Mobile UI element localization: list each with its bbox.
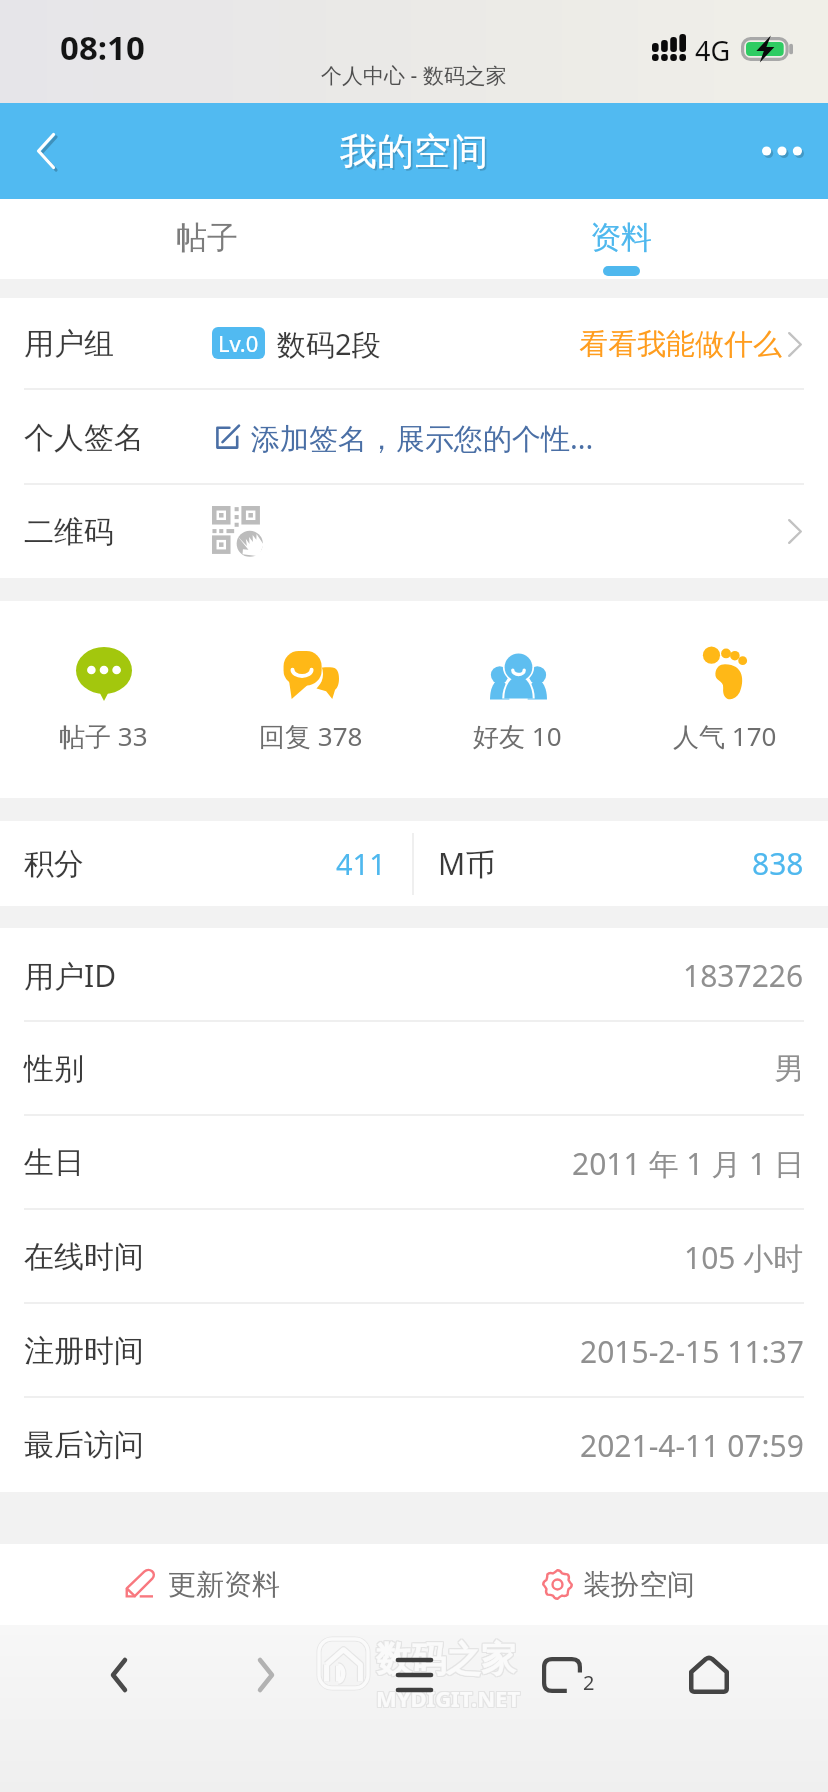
staticText: MYDIGIT.NET bbox=[375, 1683, 520, 1713]
staticText: 4G bbox=[695, 32, 731, 69]
button[interactable]: 帖子 33 bbox=[0, 601, 207, 798]
staticText: 2021-4-11 07:59 bbox=[580, 1425, 804, 1466]
staticText: 最后访问 bbox=[24, 1426, 144, 1464]
staticText: 411 bbox=[336, 844, 386, 883]
button[interactable]: 帖子 bbox=[0, 199, 414, 279]
staticText: MYDIGIT.NET bbox=[375, 1682, 520, 1712]
button[interactable]: More options bbox=[736, 105, 828, 197]
staticText: 数码2段 bbox=[277, 324, 381, 364]
button[interactable]: 生日 bbox=[0, 1116, 828, 1210]
staticText: M币 bbox=[438, 843, 496, 884]
staticText: 二维码 bbox=[24, 513, 114, 551]
button[interactable]: 积分 bbox=[0, 821, 414, 906]
button[interactable]: 性别 bbox=[0, 1022, 828, 1116]
staticText: 好友 10 bbox=[473, 718, 562, 754]
button[interactable]: 回复 378 bbox=[207, 601, 414, 798]
staticText: 添加签名，展示您的个性... bbox=[251, 418, 594, 458]
staticText: 看看我能做什么 bbox=[579, 326, 782, 363]
staticText: 用户ID bbox=[24, 955, 117, 996]
staticText: 数码之家 bbox=[377, 1638, 517, 1682]
staticText: 数码之家 bbox=[376, 1636, 516, 1680]
staticText: 我的空间 bbox=[342, 130, 490, 177]
staticText: 装扮空间 bbox=[583, 1567, 695, 1602]
button[interactable]: 二维码 bbox=[0, 485, 828, 578]
staticText: 回复 378 bbox=[259, 718, 363, 754]
button[interactable]: 用户ID bbox=[0, 928, 828, 1022]
button[interactable]: 好友 10 bbox=[414, 601, 621, 798]
staticText: 我的空间 bbox=[340, 128, 488, 175]
button[interactable]: 注册时间 bbox=[0, 1304, 828, 1398]
button[interactable]: 人气 170 bbox=[621, 601, 828, 798]
staticText: 资料 bbox=[590, 218, 652, 257]
staticText: MYDIGIT.NET bbox=[375, 1684, 520, 1714]
staticText: 个人中心 - 数码之家 bbox=[321, 61, 507, 90]
button[interactable]: 资料 bbox=[414, 199, 828, 279]
staticText: 积分 bbox=[24, 845, 84, 883]
button[interactable]: M币 bbox=[414, 821, 828, 906]
staticText: Lv.0 bbox=[218, 328, 259, 358]
staticText: 2 bbox=[583, 1669, 595, 1696]
button[interactable]: Home bbox=[676, 1642, 742, 1708]
staticText: MYDIGIT.NET bbox=[376, 1684, 521, 1714]
staticText: 数码之家 bbox=[375, 1636, 515, 1680]
staticText: MYDIGIT.NET bbox=[377, 1684, 522, 1714]
button[interactable]: 在线时间 bbox=[0, 1210, 828, 1304]
staticText: 2015-2-15 11:37 bbox=[580, 1331, 804, 1372]
staticText: MYDIGIT.NET bbox=[376, 1683, 521, 1713]
button[interactable]: 个人签名 bbox=[0, 390, 828, 485]
staticText: 帖子 bbox=[176, 218, 238, 257]
button[interactable]: 最后访问 bbox=[0, 1398, 828, 1492]
button[interactable]: Back bbox=[86, 1642, 152, 1708]
staticText: 105 小时 bbox=[684, 1237, 804, 1278]
staticText: 帖子 33 bbox=[59, 718, 148, 754]
staticText: 个人签名 bbox=[24, 419, 144, 457]
staticText: 数码之家 bbox=[377, 1637, 517, 1681]
staticText: 08:10 bbox=[60, 25, 145, 70]
staticText: 用户组 bbox=[24, 325, 114, 363]
staticText: 男 bbox=[774, 1050, 804, 1088]
staticText: 生日 bbox=[24, 1144, 84, 1182]
button[interactable]: Recent apps bbox=[529, 1642, 595, 1708]
staticText: MYDIGIT.NET bbox=[377, 1683, 522, 1713]
staticText: 数码之家 bbox=[375, 1637, 515, 1681]
button[interactable]: 更新资料 bbox=[0, 1544, 414, 1625]
button[interactable]: 装扮空间 bbox=[414, 1544, 828, 1625]
staticText: 数码之家 bbox=[375, 1638, 515, 1682]
staticText: 数码之家 bbox=[377, 1636, 517, 1680]
button[interactable]: 用户组 bbox=[0, 298, 828, 390]
staticText: 2011 年 1 月 1 日 bbox=[572, 1143, 804, 1184]
staticText: 数码之家 bbox=[376, 1638, 516, 1682]
staticText: 1837226 bbox=[683, 955, 804, 996]
button[interactable]: Back bbox=[0, 105, 92, 197]
staticText: MYDIGIT.NET bbox=[376, 1682, 521, 1712]
staticText: 注册时间 bbox=[24, 1332, 144, 1370]
staticText: 性别 bbox=[24, 1050, 84, 1088]
staticText: 人气 170 bbox=[673, 718, 777, 754]
staticText: MYDIGIT.NET bbox=[377, 1682, 522, 1712]
staticText: 在线时间 bbox=[24, 1238, 144, 1276]
staticText: 更新资料 bbox=[168, 1567, 280, 1602]
staticText: 数码之家 bbox=[376, 1637, 516, 1681]
button[interactable]: Forward bbox=[233, 1642, 299, 1708]
staticText: 838 bbox=[752, 843, 804, 884]
button[interactable]: Menu bbox=[381, 1642, 447, 1708]
